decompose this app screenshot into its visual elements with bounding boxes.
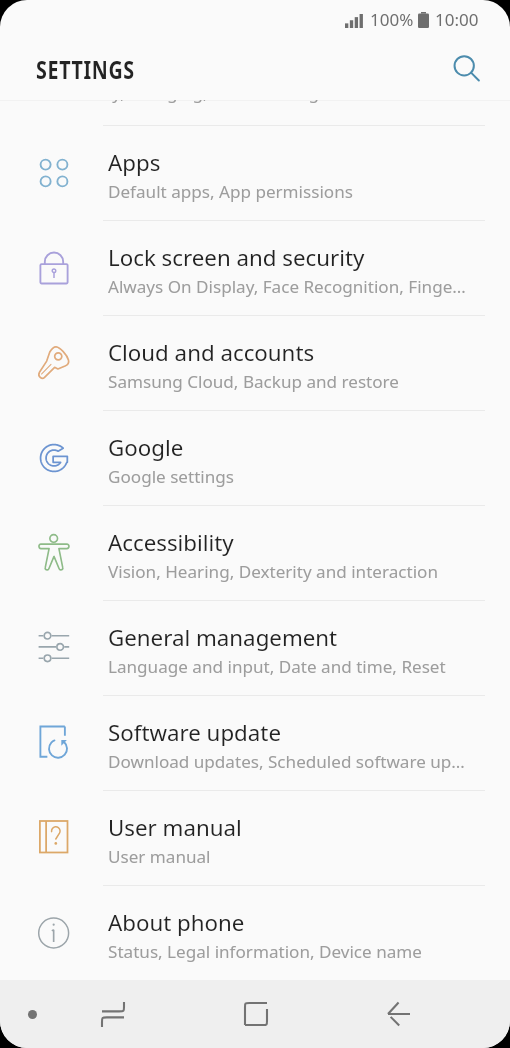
staticText: ty, Charging, Power saving <box>106 100 319 104</box>
staticText: User manual <box>108 812 242 842</box>
button[interactable]: Cloud and accounts <box>0 316 510 410</box>
staticText: Default apps, App permissions <box>108 180 353 203</box>
staticText: 10:00 <box>435 8 479 31</box>
staticText: Status, Legal information, Device name <box>108 940 422 963</box>
staticText: Language and input, Date and time, Reset <box>108 655 446 678</box>
button[interactable]: Recent apps <box>83 984 143 1044</box>
staticText: Software update <box>108 717 281 747</box>
staticText: Google <box>108 432 184 462</box>
staticText: Google settings <box>108 465 234 488</box>
staticText: Vision, Hearing, Dexterity and interacti… <box>108 560 438 583</box>
staticText: User manual <box>108 845 211 868</box>
staticText: Samsung Cloud, Backup and restore <box>108 370 399 393</box>
button[interactable]: Home <box>226 984 286 1044</box>
staticText: Cloud and accounts <box>108 337 315 367</box>
button[interactable]: Google <box>0 411 510 505</box>
staticText: Accessibility <box>108 527 234 557</box>
button[interactable]: General management <box>0 601 510 695</box>
staticText: SETTINGS <box>36 53 135 87</box>
button[interactable]: Software update <box>0 696 510 790</box>
staticText: General management <box>108 622 338 652</box>
button[interactable]: Search <box>449 52 485 88</box>
button[interactable]: Lock screen and security <box>0 221 510 315</box>
button[interactable]: Back <box>369 984 429 1044</box>
staticText: Download updates, Scheduled software up… <box>108 750 465 773</box>
staticText: Lock screen and security <box>108 242 365 272</box>
button[interactable]: Menu <box>6 988 58 1040</box>
staticText: Apps <box>108 147 161 177</box>
button[interactable]: About phone <box>0 886 510 980</box>
button[interactable]: User manual <box>0 791 510 885</box>
button[interactable]: Accessibility <box>0 506 510 600</box>
staticText: About phone <box>108 907 245 937</box>
button[interactable]: Apps <box>0 126 510 220</box>
staticText: 100% <box>370 8 414 31</box>
staticText: Always On Display, Face Recognition, Fin… <box>108 275 466 298</box>
